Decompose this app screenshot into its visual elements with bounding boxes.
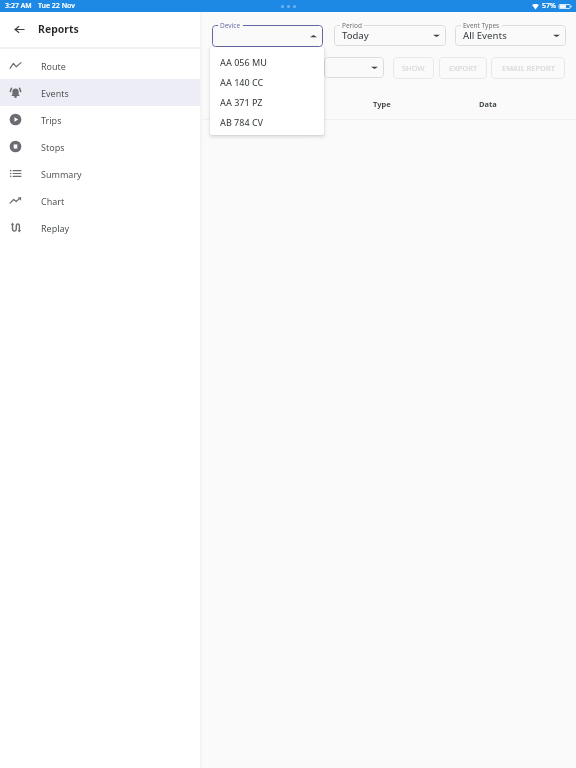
button[interactable] bbox=[334, 25, 446, 46]
staticText: Device bbox=[220, 21, 241, 30]
staticText: EMAIL REPORT bbox=[502, 63, 555, 73]
staticText: Reports bbox=[38, 22, 79, 36]
button[interactable] bbox=[455, 25, 566, 46]
staticText: Trips bbox=[41, 114, 62, 126]
button[interactable]: Summary bbox=[0, 160, 200, 187]
staticText: Replay bbox=[41, 222, 70, 234]
staticText: Summary bbox=[41, 168, 82, 180]
button[interactable]: Chart bbox=[0, 187, 200, 214]
staticText: Route bbox=[41, 60, 66, 72]
button[interactable]: Trips bbox=[0, 106, 200, 133]
button[interactable]: Back bbox=[8, 18, 30, 40]
button[interactable]: AA 056 MU bbox=[210, 52, 324, 72]
button[interactable]: Route bbox=[0, 52, 200, 79]
button[interactable]: AB 784 CV bbox=[210, 112, 324, 132]
staticText: EXPORT bbox=[449, 63, 478, 73]
staticText: Tue 22 Nov bbox=[38, 1, 75, 11]
staticText: 57% bbox=[542, 1, 556, 11]
staticText: Data bbox=[479, 99, 497, 109]
staticText: Type bbox=[373, 99, 391, 109]
button[interactable]: EXPORT bbox=[439, 57, 487, 79]
staticText: All Events bbox=[463, 29, 507, 42]
button[interactable] bbox=[324, 57, 384, 78]
button[interactable]: Stops bbox=[0, 133, 200, 160]
button[interactable]: SHOW bbox=[393, 57, 434, 79]
staticText: 3:27 AM bbox=[5, 1, 32, 11]
staticText: AA 371 PZ bbox=[220, 96, 263, 108]
button[interactable]: AA 140 CC bbox=[210, 72, 324, 92]
staticText: Stops bbox=[41, 141, 65, 153]
staticText: Today bbox=[342, 29, 369, 42]
button[interactable]: Events bbox=[0, 79, 200, 106]
button[interactable]: EMAIL REPORT bbox=[491, 57, 565, 79]
staticText: AA 056 MU bbox=[220, 56, 267, 68]
staticText: AB 784 CV bbox=[220, 116, 264, 128]
staticText: Event Types bbox=[463, 21, 500, 30]
button[interactable]: Replay bbox=[0, 214, 200, 241]
staticText: Events bbox=[41, 87, 69, 99]
staticText: Period bbox=[342, 21, 362, 30]
button[interactable] bbox=[212, 25, 323, 47]
button[interactable]: AA 371 PZ bbox=[210, 92, 324, 112]
staticText: SHOW bbox=[402, 63, 425, 73]
staticText: Chart bbox=[41, 195, 65, 207]
staticText: AA 140 CC bbox=[220, 76, 264, 88]
